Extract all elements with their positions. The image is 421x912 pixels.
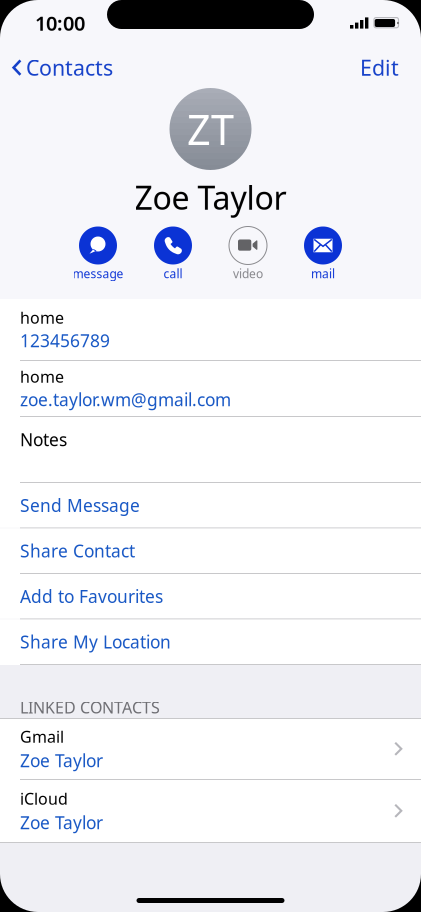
button[interactable]: Share My Location [0, 619, 421, 664]
staticText: Gmail [20, 726, 64, 747]
button[interactable]: iCloud [0, 780, 421, 842]
staticText: Notes [20, 428, 67, 451]
staticText: Zoe Taylor [20, 749, 103, 772]
staticText: Send Message [20, 494, 140, 517]
button[interactable]: Notes [0, 417, 421, 482]
staticText: LINKED CONTACTS [20, 697, 160, 718]
staticText: video [233, 265, 263, 281]
button[interactable]: Edit [360, 50, 421, 84]
staticText: Add to Favourites [20, 585, 163, 608]
button[interactable]: Gmail [0, 719, 421, 779]
staticText: iCloud [20, 788, 68, 809]
staticText: 123456789 [20, 329, 110, 352]
staticText: mail [311, 265, 335, 281]
staticText: Edit [360, 53, 399, 82]
staticText: ZT [187, 102, 234, 156]
staticText: Share My Location [20, 630, 171, 653]
staticText: call [163, 265, 182, 281]
button[interactable]: mail [285, 226, 360, 282]
staticText: Zoe Taylor [20, 811, 103, 834]
button[interactable]: Contacts [0, 50, 113, 84]
button[interactable]: Add to Favourites [0, 574, 421, 618]
button[interactable]: Send Message [0, 483, 421, 527]
button[interactable]: home [0, 361, 421, 416]
staticText: Share Contact [20, 539, 135, 562]
staticText: home [20, 366, 64, 387]
staticText: home [20, 307, 64, 328]
button[interactable]: home [0, 299, 421, 360]
staticText: 10:00 [35, 10, 85, 36]
button[interactable]: video [210, 226, 285, 282]
staticText: zoe.taylor.wm@gmail.com [20, 388, 231, 411]
staticText: Zoe Taylor [134, 176, 286, 218]
button[interactable]: message [60, 226, 135, 282]
staticText: Contacts [26, 53, 113, 82]
button[interactable]: call [135, 226, 210, 282]
button[interactable]: Share Contact [0, 528, 421, 573]
staticText: message [72, 265, 123, 281]
